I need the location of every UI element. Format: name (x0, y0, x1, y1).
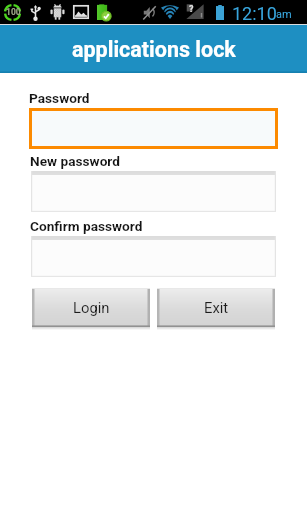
staticText: ? (189, 4, 194, 15)
staticText: Login (73, 299, 110, 316)
staticText: Password (29, 90, 90, 106)
button[interactable] (29, 108, 278, 149)
staticText: applications lock (72, 37, 236, 62)
staticText: New password (30, 153, 120, 169)
staticText: Confirm password (30, 218, 143, 234)
button[interactable] (31, 171, 276, 212)
staticText: 100 (6, 7, 21, 17)
staticText: Exit (204, 299, 229, 316)
staticText: am (276, 8, 292, 21)
staticText: 12:10 (232, 3, 277, 24)
button[interactable]: Login (32, 288, 150, 327)
button[interactable]: Exit (157, 288, 275, 327)
button[interactable] (31, 236, 276, 277)
button[interactable]: applications lock (0, 25, 307, 73)
